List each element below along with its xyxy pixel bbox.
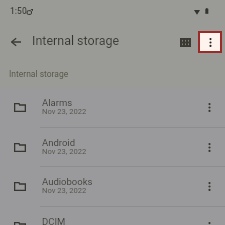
button[interactable]: Grid view <box>171 28 199 56</box>
button[interactable]: More options <box>196 134 222 160</box>
staticText: Nov 23, 2022 <box>42 147 87 156</box>
staticText: 1:50 <box>10 6 27 16</box>
button[interactable]: More options <box>200 33 220 51</box>
button[interactable]: Audiobooks <box>0 167 225 206</box>
staticText: Internal storage <box>9 69 69 79</box>
button[interactable]: DCIM <box>0 207 225 225</box>
staticText: Internal storage <box>32 33 120 48</box>
button[interactable]: Alarms <box>0 88 225 127</box>
staticText: DCIM <box>42 216 66 225</box>
button[interactable]: Navigate up <box>1 27 31 57</box>
button[interactable]: More options <box>196 213 222 225</box>
staticText: Alarms <box>42 97 73 108</box>
staticText: Audiobooks <box>42 176 93 187</box>
button[interactable]: Android <box>0 128 225 167</box>
button[interactable]: More options <box>196 94 222 120</box>
staticText: Android <box>42 137 76 148</box>
button[interactable]: More options <box>196 173 222 199</box>
staticText: Nov 23, 2022 <box>42 186 87 195</box>
staticText: Nov 23, 2022 <box>42 107 87 116</box>
